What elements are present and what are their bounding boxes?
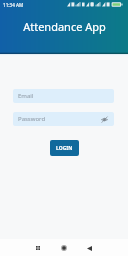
button[interactable]: Home	[58, 242, 70, 254]
staticText: 11:34 AM	[3, 2, 24, 8]
button[interactable]: Show password	[100, 115, 108, 123]
staticText: Email	[18, 92, 34, 100]
button[interactable]: Password	[13, 112, 114, 126]
button[interactable]: LOGIN	[50, 140, 79, 156]
staticText: Password	[18, 115, 46, 123]
button[interactable]: Recents	[32, 242, 44, 254]
button[interactable]: Email	[13, 89, 114, 103]
staticText: LOGIN	[56, 145, 73, 152]
staticText: Attendance App	[23, 19, 106, 34]
button[interactable]: Back	[83, 242, 95, 254]
